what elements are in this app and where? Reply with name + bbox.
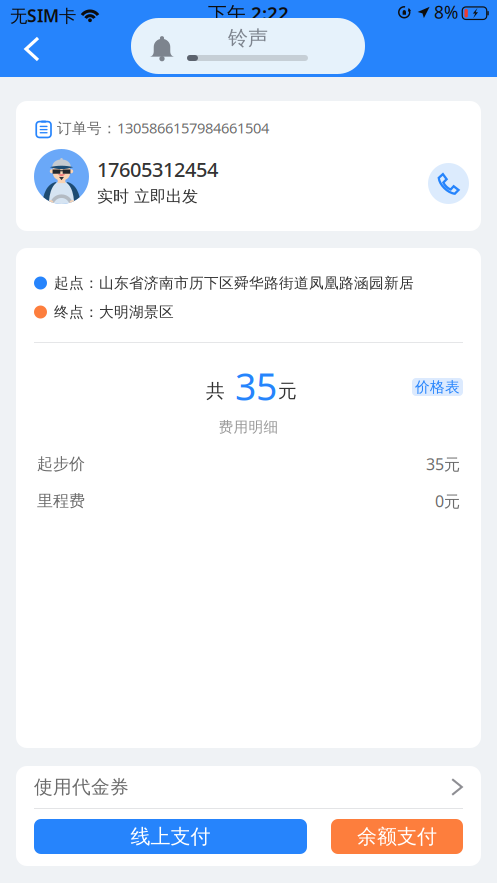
staticText: 起步价 <box>37 454 85 474</box>
button[interactable]: Back <box>9 27 55 71</box>
button[interactable]: 线上支付 <box>34 819 307 854</box>
staticText: 铃声 <box>228 26 268 50</box>
button[interactable]: 使用代金券 <box>16 766 481 808</box>
staticText: 下午 2:22 <box>208 1 289 25</box>
staticText: 费用明细 <box>218 418 278 436</box>
button[interactable]: Call driver <box>428 163 469 204</box>
staticText: 共 <box>206 379 225 402</box>
staticText: 8% <box>434 0 458 23</box>
staticText: 17605312454 <box>97 156 218 183</box>
button[interactable]: 价格表 <box>412 378 463 396</box>
staticText: 终点：大明湖景区 <box>54 303 174 321</box>
staticText: 价格表 <box>415 378 460 396</box>
staticText: 实时 立即出发 <box>97 187 198 206</box>
staticText: 使用代金券 <box>34 775 129 798</box>
staticText: 无SIM卡 <box>10 4 76 27</box>
staticText: 35 <box>235 361 277 411</box>
staticText: 订单号：1305866157984661504 <box>57 118 269 137</box>
staticText: 线上支付 <box>130 824 210 849</box>
button[interactable]: 余额支付 <box>331 819 463 854</box>
staticText: 0元 <box>435 490 460 512</box>
staticText: 里程费 <box>37 491 85 511</box>
staticText: 余额支付 <box>357 824 437 849</box>
staticText: 35元 <box>426 453 460 475</box>
staticText: 起点：山东省济南市历下区舜华路街道凤凰路涵园新居 <box>54 274 414 292</box>
staticText: 元 <box>278 379 297 402</box>
